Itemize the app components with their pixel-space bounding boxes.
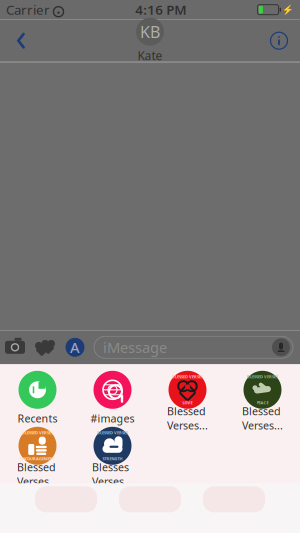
button[interactable]: Recents (0, 369, 75, 425)
staticText: Blessed Verses... (242, 404, 283, 432)
button[interactable]: Details (264, 24, 294, 58)
staticText: iMessage (103, 338, 167, 357)
button[interactable]: App Store (60, 330, 90, 364)
button[interactable]: BLESSED VERSES (0, 425, 75, 481)
staticText: BLESSED VERSES (97, 430, 128, 435)
staticText: 4:16 PM (135, 1, 186, 18)
button[interactable]: #images (75, 369, 150, 425)
button[interactable]: BLESSED VERSES (150, 369, 225, 425)
staticText: KB (140, 21, 160, 42)
staticText: ⚡ (282, 4, 294, 15)
button[interactable]: iMessage (94, 336, 293, 358)
button[interactable]: BLESSED VERSES (225, 369, 300, 425)
staticText: Recents (17, 411, 57, 425)
staticText: STRENGTH (102, 456, 122, 461)
staticText: BLESSED VERSES (22, 430, 53, 435)
button[interactable]: BLESSED VERSES (75, 425, 150, 481)
staticText: #images (90, 411, 134, 425)
staticText: Carrier (6, 1, 50, 18)
staticText: Blesses Verses... (92, 460, 133, 488)
staticText: Kate (137, 48, 162, 64)
button[interactable]: Digital Touch (30, 330, 60, 364)
staticText: Blessed Verses... (17, 460, 58, 488)
staticText: ENCOURAGEMENT (20, 456, 55, 461)
staticText: LOVE (182, 400, 192, 405)
button[interactable]: Back (6, 24, 36, 58)
staticText: BLESSED VERSES (247, 374, 278, 379)
button[interactable]: Camera (0, 330, 30, 364)
button[interactable]: KB (136, 18, 164, 64)
staticText: PEACE (256, 400, 268, 405)
staticText: A (70, 338, 80, 357)
staticText: Blessed Verses... (167, 404, 208, 432)
staticText: BLESSED VERSES (172, 374, 203, 379)
